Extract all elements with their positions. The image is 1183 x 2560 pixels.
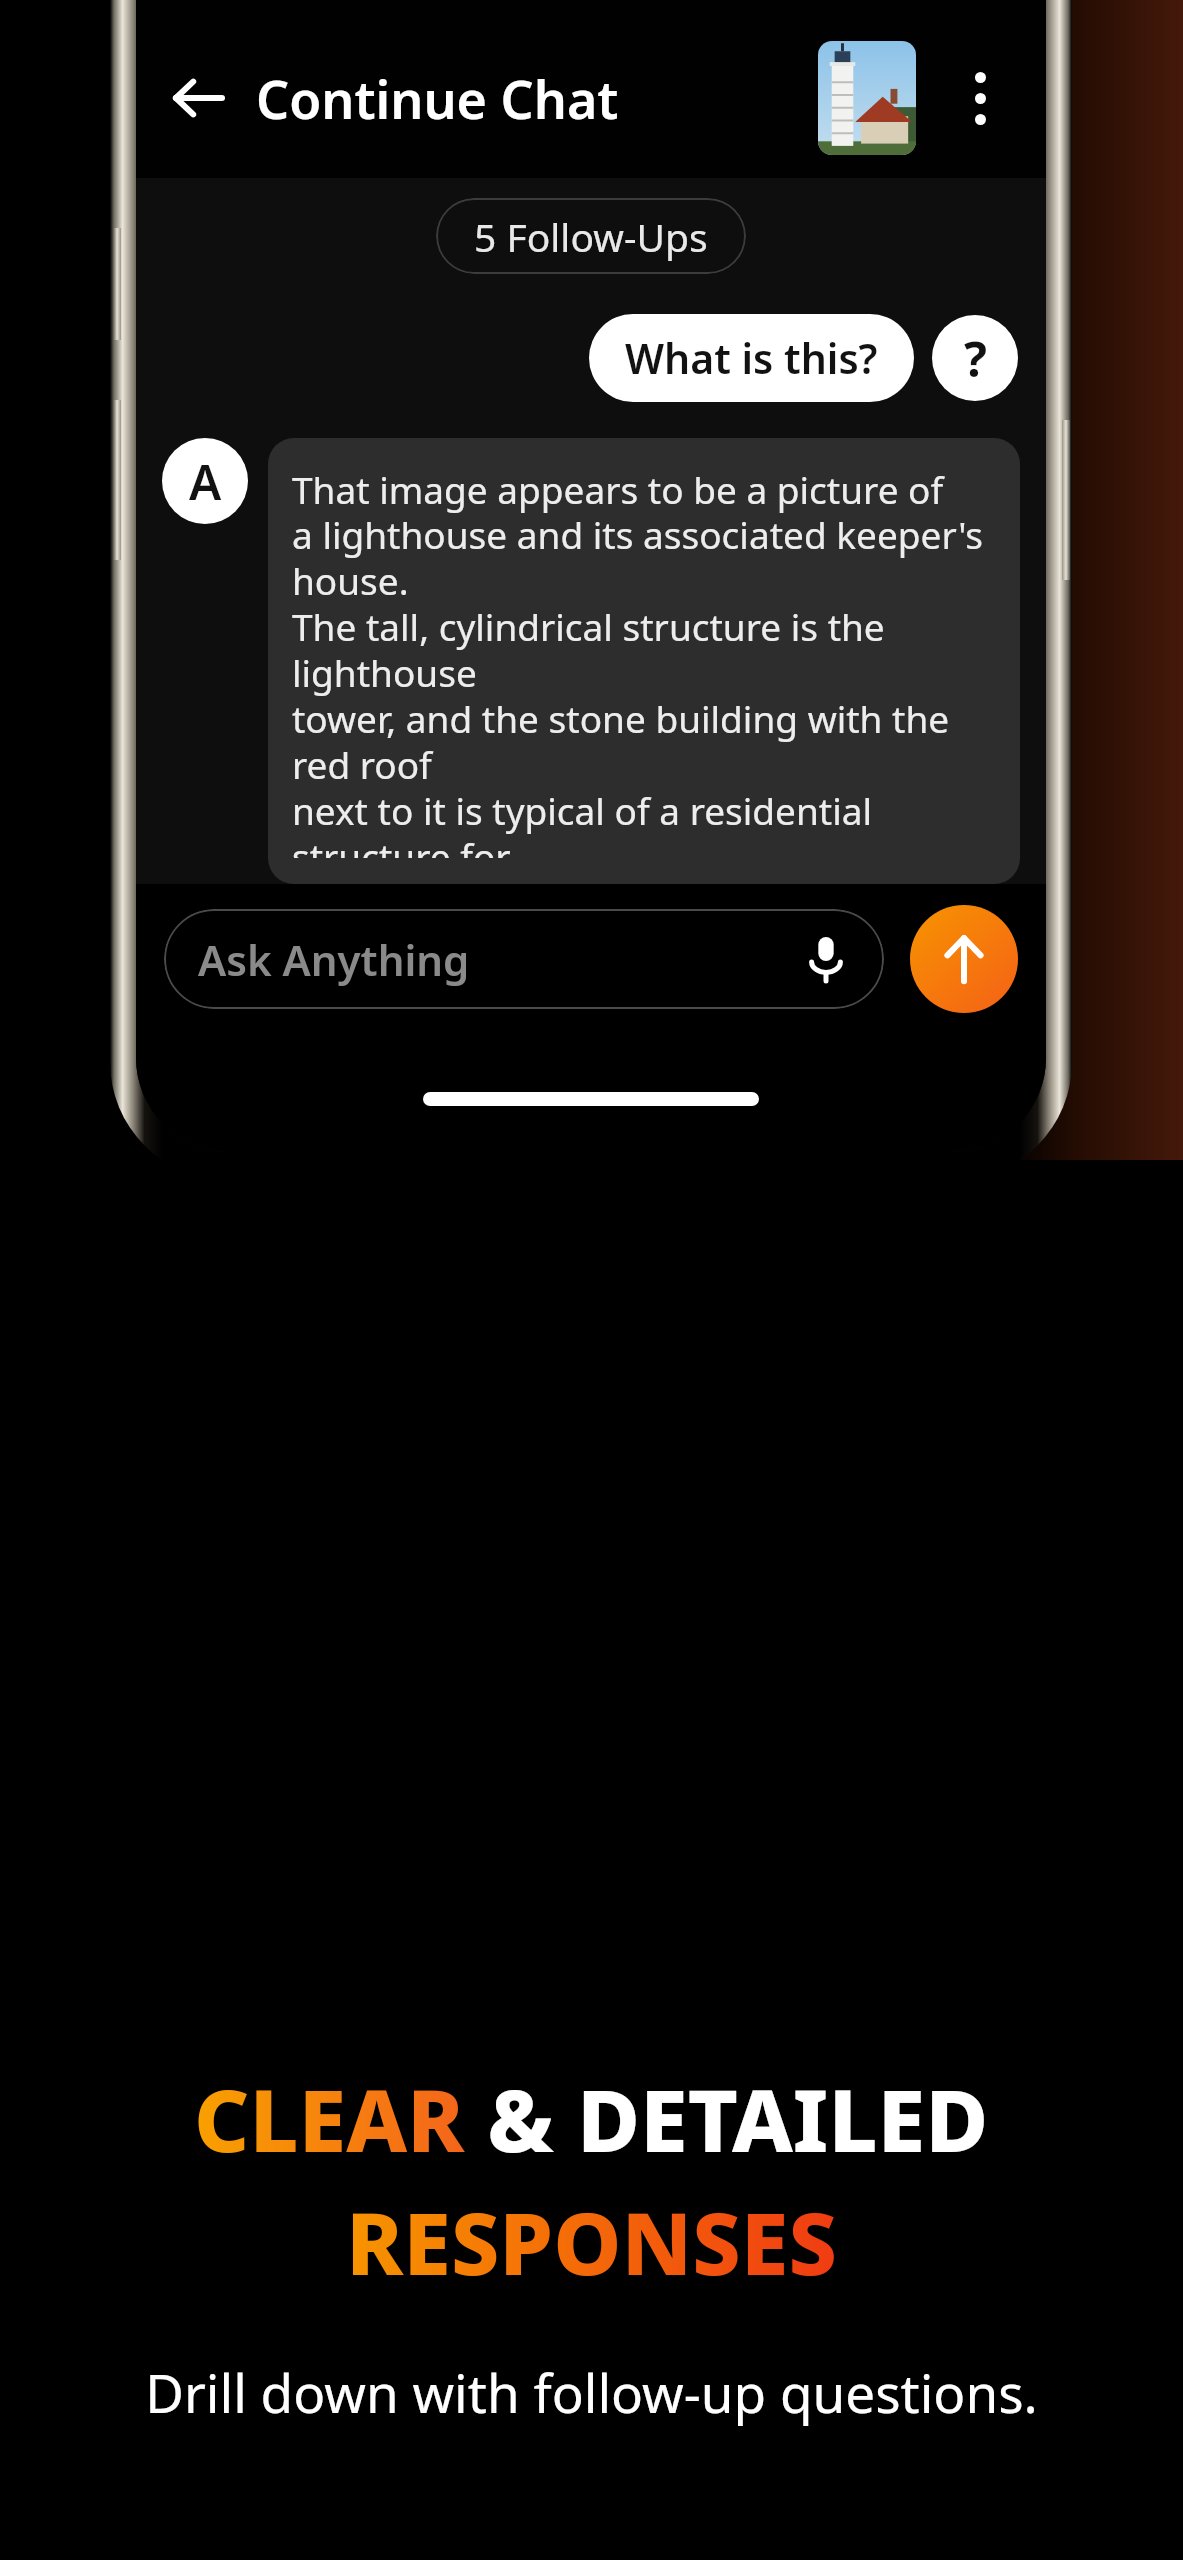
- staticText: A: [189, 449, 222, 514]
- button[interactable]: You: [932, 315, 1018, 401]
- button[interactable]: Send: [910, 905, 1018, 1013]
- staticText: Ask Anything: [198, 931, 470, 988]
- button[interactable]: More options: [940, 58, 1020, 138]
- staticText: Continue Chat: [256, 63, 619, 134]
- button[interactable]: That image appears to be a picture of a …: [268, 438, 1020, 884]
- staticText: DETAILED: [577, 2060, 989, 2177]
- staticText: RESPONSES: [346, 2183, 837, 2300]
- staticText: 5 Follow-Ups: [474, 210, 708, 263]
- staticText: &: [465, 2060, 577, 2177]
- button[interactable]: 5 Follow-Ups: [436, 198, 746, 274]
- staticText: That image appears to be a picture of a …: [292, 464, 996, 858]
- button[interactable]: Assistant: [162, 438, 248, 524]
- button[interactable]: Back: [154, 54, 242, 142]
- staticText: ?: [964, 326, 987, 391]
- button[interactable]: Attached image: [818, 41, 916, 155]
- button[interactable]: Ask Anything: [164, 909, 884, 1009]
- staticText: What is this?: [625, 330, 878, 386]
- staticText: Drill down with follow-up questions.: [145, 2356, 1038, 2428]
- button[interactable]: What is this?: [589, 314, 914, 402]
- button[interactable]: Voice input: [798, 931, 854, 987]
- staticText: CLEAR: [194, 2060, 465, 2177]
